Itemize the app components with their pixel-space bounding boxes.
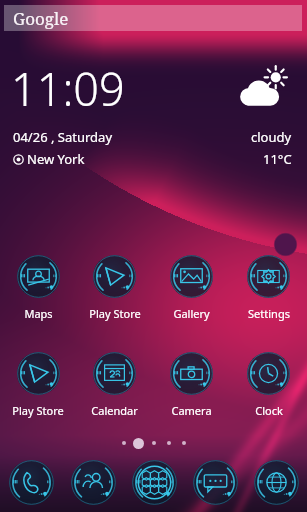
staticText: Clock	[255, 403, 283, 418]
button[interactable]: Browser	[246, 459, 307, 505]
staticText: Settings	[248, 306, 290, 321]
button[interactable]: Calendar	[76, 352, 153, 418]
button[interactable]: Gallery	[153, 255, 230, 321]
staticText: Maps	[24, 306, 53, 321]
staticText: Google	[13, 7, 69, 30]
button[interactable]: Clock	[230, 352, 307, 418]
staticText: Play Store	[89, 306, 141, 321]
button[interactable]: Play Store	[0, 352, 76, 418]
button[interactable]: All apps	[124, 459, 185, 505]
staticText: Calendar	[91, 403, 138, 418]
button[interactable]: Messages	[185, 459, 246, 505]
staticText: cloudy	[251, 128, 292, 146]
button[interactable]: Settings	[230, 255, 307, 321]
button[interactable]: Camera	[153, 352, 230, 418]
staticText: 11°C	[263, 150, 292, 168]
staticText: Play Store	[12, 403, 64, 418]
staticText: New York	[27, 150, 85, 168]
button[interactable]: Contacts	[62, 459, 124, 505]
button[interactable]: Google	[4, 5, 302, 31]
staticText: 11:09	[11, 58, 125, 119]
button[interactable]: Maps	[0, 255, 76, 321]
button[interactable]: Phone	[0, 459, 62, 505]
button[interactable]: Play Store	[76, 255, 153, 321]
staticText: Gallery	[173, 306, 210, 321]
staticText: Camera	[171, 403, 212, 418]
staticText: 04/26 , Saturday	[13, 128, 113, 146]
